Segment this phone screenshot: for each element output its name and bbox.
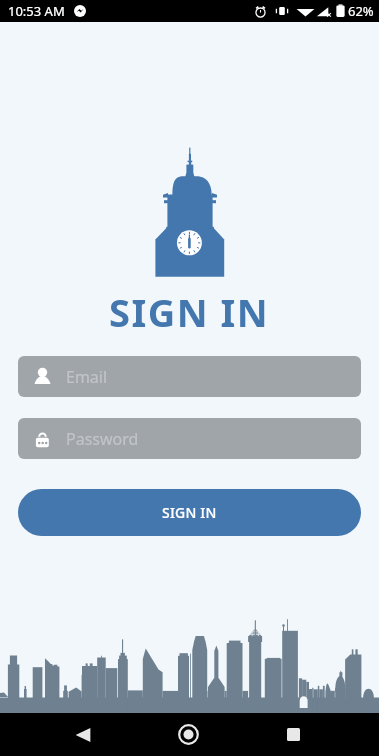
staticText: 62%	[348, 2, 374, 20]
button[interactable]: Password	[18, 418, 361, 459]
staticText: 10:53 AM	[8, 2, 65, 20]
staticText: SIGN IN	[162, 503, 217, 522]
button[interactable]: Back	[60, 713, 106, 756]
button[interactable]: Recents	[270, 713, 316, 756]
button[interactable]: Home	[165, 713, 211, 756]
button[interactable]: Email	[18, 356, 361, 397]
staticText: Password	[66, 428, 139, 450]
staticText: SIGN IN	[109, 286, 270, 338]
staticText: Email	[66, 366, 108, 388]
button[interactable]: SIGN IN	[18, 489, 361, 536]
